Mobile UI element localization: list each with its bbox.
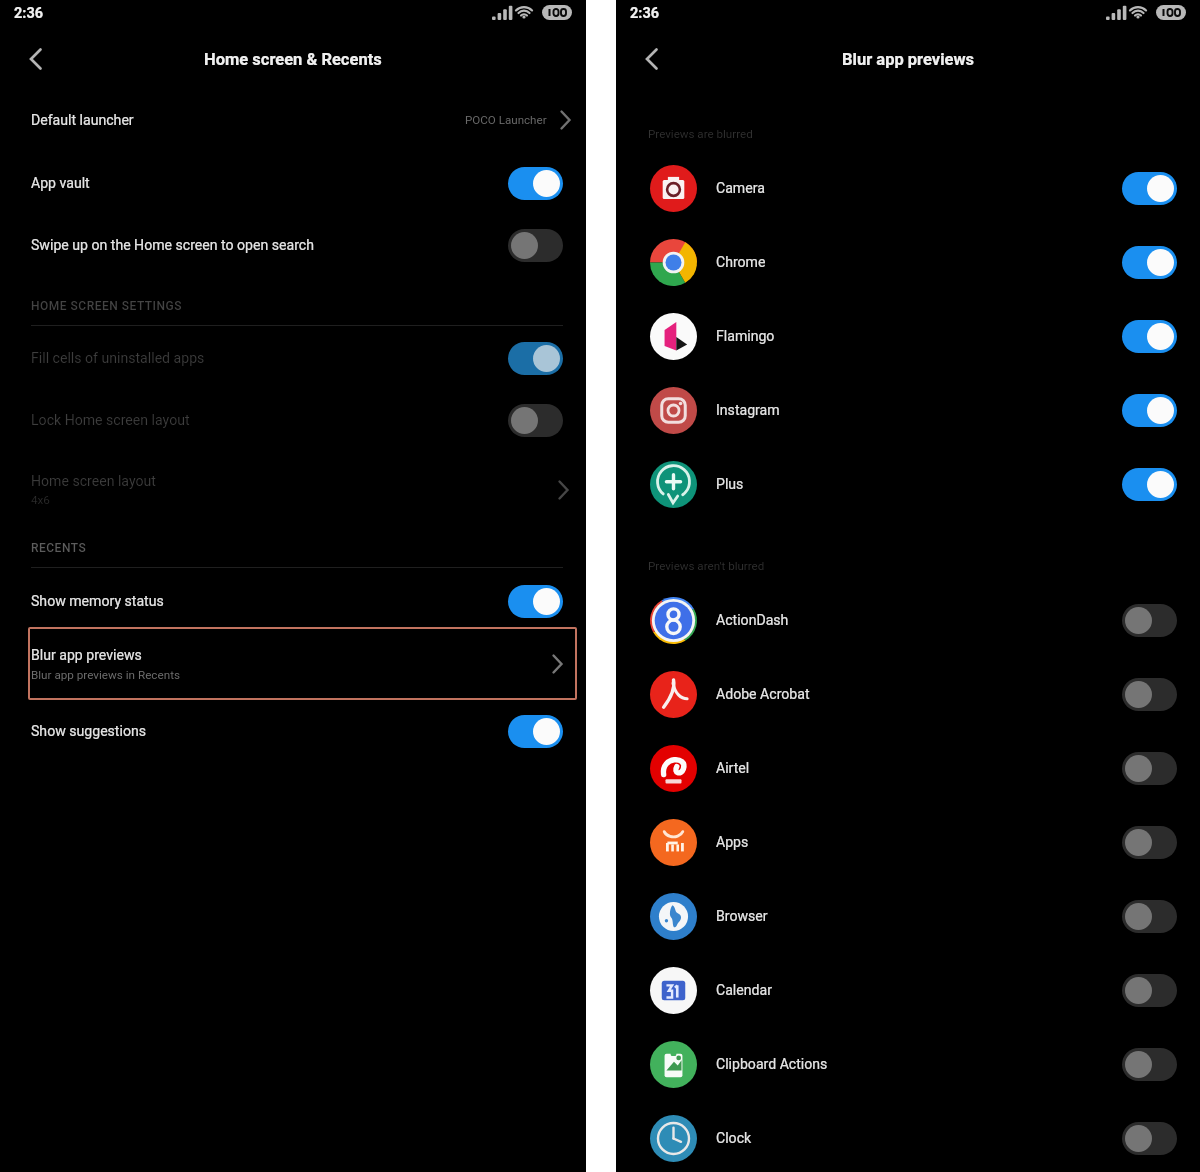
button[interactable]: Switch off <box>1122 900 1177 933</box>
button[interactable]: Switch on <box>1122 468 1177 501</box>
button[interactable]: Switch off <box>1122 826 1177 859</box>
button[interactable]: Blur app previews <box>28 627 577 700</box>
staticText: Show memory status <box>31 593 164 610</box>
button[interactable]: Airtel <box>616 731 1200 805</box>
button[interactable]: Switch on <box>508 167 563 200</box>
staticText: Fill cells of uninstalled apps <box>31 350 205 367</box>
staticText: App vault <box>31 175 90 192</box>
button[interactable]: Switch off <box>1122 1048 1177 1081</box>
button[interactable]: Switch off <box>508 404 563 437</box>
staticText: Blur app previews <box>31 647 142 664</box>
button[interactable]: Switch off <box>1122 678 1177 711</box>
button[interactable]: Back <box>12 35 60 83</box>
staticText: ActionDash <box>716 612 789 629</box>
staticText: Lock Home screen layout <box>31 412 190 429</box>
button[interactable]: Home screen layout <box>0 461 586 519</box>
staticText: Previews are blurred <box>648 127 753 141</box>
button[interactable]: Switch on <box>1122 320 1177 353</box>
staticText: Flamingo <box>716 328 775 345</box>
staticText: Clock <box>716 1130 752 1147</box>
button[interactable]: Switch on <box>1122 246 1177 279</box>
button[interactable]: Swipe up on the Home screen to open sear… <box>0 217 586 273</box>
button[interactable]: Show memory status <box>0 573 586 629</box>
staticText: Default launcher <box>31 112 134 129</box>
button[interactable]: Default launcher <box>0 92 586 148</box>
button[interactable]: Switch off <box>1122 974 1177 1007</box>
button[interactable]: Switch off <box>1122 604 1177 637</box>
button[interactable]: Back <box>628 35 676 83</box>
staticText: Blur app previews in Recents <box>31 668 180 682</box>
staticText: Chrome <box>716 254 766 271</box>
button[interactable]: Show suggestions <box>0 703 586 759</box>
staticText: 2:36 <box>14 5 44 22</box>
staticText: 4x6 <box>31 493 50 507</box>
staticText: Previews aren't blurred <box>648 559 765 573</box>
staticText: 2:36 <box>630 5 660 22</box>
staticText: Camera <box>716 180 765 197</box>
button[interactable]: Lock Home screen layout <box>0 392 586 448</box>
button[interactable]: Switch off <box>508 229 563 262</box>
staticText: Show suggestions <box>31 723 147 740</box>
button[interactable]: Switch off <box>1122 1122 1177 1155</box>
staticText: Airtel <box>716 760 750 777</box>
staticText: Clipboard Actions <box>716 1056 828 1073</box>
button[interactable]: Switch on <box>508 342 563 375</box>
staticText: Blur app previews <box>842 50 975 69</box>
button[interactable]: Switch on <box>1122 394 1177 427</box>
button[interactable]: Switch on <box>1122 172 1177 205</box>
button[interactable]: Flamingo <box>616 299 1200 373</box>
button[interactable]: Clipboard Actions <box>616 1027 1200 1101</box>
button[interactable]: Apps <box>616 805 1200 879</box>
staticText: Calendar <box>716 982 772 999</box>
staticText: Browser <box>716 908 768 925</box>
button[interactable]: Switch on <box>508 715 563 748</box>
button[interactable]: ActionDash <box>616 583 1200 657</box>
button[interactable]: Camera <box>616 151 1200 225</box>
button[interactable]: Adobe Acrobat <box>616 657 1200 731</box>
button[interactable]: Switch on <box>508 585 563 618</box>
button[interactable]: Plus <box>616 447 1200 521</box>
button[interactable]: Switch off <box>1122 752 1177 785</box>
button[interactable]: App vault <box>0 155 586 211</box>
button[interactable]: Browser <box>616 879 1200 953</box>
staticText: RECENTS <box>31 541 87 555</box>
button[interactable]: Calendar <box>616 953 1200 1027</box>
staticText: Home screen layout <box>31 473 156 490</box>
button[interactable]: Chrome <box>616 225 1200 299</box>
staticText: Apps <box>716 834 749 851</box>
staticText: Plus <box>716 476 744 493</box>
button[interactable]: Instagram <box>616 373 1200 447</box>
staticText: POCO Launcher <box>465 113 547 127</box>
staticText: HOME SCREEN SETTINGS <box>31 299 182 313</box>
staticText: Adobe Acrobat <box>716 686 810 703</box>
button[interactable]: Fill cells of uninstalled apps <box>0 330 586 386</box>
button[interactable]: Clock <box>616 1101 1200 1172</box>
staticText: Swipe up on the Home screen to open sear… <box>31 237 314 254</box>
staticText: Instagram <box>716 402 780 419</box>
staticText: Home screen & Recents <box>204 50 382 69</box>
